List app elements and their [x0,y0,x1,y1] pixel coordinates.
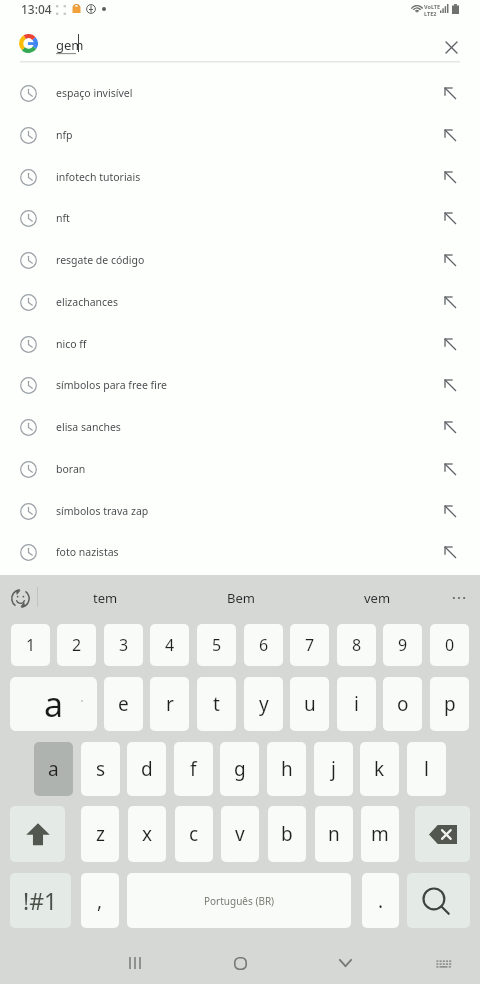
button[interactable]: e [104,677,143,731]
button[interactable]: 2 [57,624,96,666]
staticText: 8 [352,634,362,656]
staticText: 4 [165,634,175,656]
staticText: vem [364,589,391,607]
button[interactable]: p [430,677,469,731]
button[interactable]: nft [0,197,480,239]
button[interactable]: símbolos para free fire [0,364,480,406]
staticText: s [96,756,106,782]
button[interactable]: i [337,677,376,731]
button[interactable]: 0 [430,624,469,666]
button[interactable]: resgate de código [0,239,480,281]
staticText: e [118,691,129,717]
staticText: 5 [212,634,222,656]
button[interactable]: Bem [186,575,296,621]
button[interactable]: v [221,806,259,862]
button[interactable]: espaço invisível [0,72,480,114]
staticText: k [374,756,385,782]
button[interactable]: o [383,677,422,731]
staticText: elisa sanches [56,420,121,434]
staticText: elizachances [56,295,119,309]
button[interactable]: 9 [383,624,422,666]
button[interactable]: 1 [11,624,50,666]
button[interactable]: Recents [112,944,157,984]
button[interactable]: símbolos trava zap [0,490,480,532]
button[interactable]: m [361,806,399,862]
button[interactable]: w [57,677,96,731]
staticText: 13:04 [21,1,52,17]
staticText: c [189,821,199,847]
staticText: a [44,681,64,727]
button[interactable]: Clear [435,31,467,63]
button[interactable]: r [150,677,189,731]
button[interactable]: , [81,873,119,928]
button[interactable]: k [360,742,399,796]
button[interactable]: b [268,806,306,862]
staticText: t [213,691,220,717]
button[interactable]: elisa sanches [0,406,480,448]
button[interactable]: nico ff [0,323,480,365]
button[interactable]: l [407,742,446,796]
button[interactable]: . [362,873,399,928]
staticText: espaço invisível [56,86,133,100]
staticText: !#1 [23,885,58,916]
button[interactable]: 3 [104,624,143,666]
staticText: l [424,756,429,782]
staticText: y [259,691,269,717]
button[interactable]: 7 [290,624,329,666]
staticText: 9 [398,634,408,656]
staticText: o [397,691,409,717]
button[interactable]: infotech tutoriais [0,156,480,198]
button[interactable]: foto nazistas [0,531,480,573]
staticText: z [96,821,105,847]
button[interactable]: a [34,742,73,796]
button[interactable]: tem [50,575,160,621]
staticText: boran [56,462,86,476]
button[interactable]: Backspace [415,806,470,862]
button[interactable]: x [128,806,166,862]
staticText: , [97,888,103,914]
button[interactable]: More options [442,575,476,621]
button[interactable]: 5 [197,624,236,666]
button[interactable]: Change keyboard [421,944,466,984]
button[interactable]: 4 [150,624,189,666]
button[interactable]: Home [218,944,263,984]
staticText: 2 [72,634,82,656]
button[interactable]: y [244,677,283,731]
button[interactable]: Shift [10,806,65,862]
button[interactable]: nfp [0,114,480,156]
button[interactable]: boran [0,448,480,490]
button[interactable]: c [175,806,213,862]
button[interactable]: j [314,742,353,796]
staticText: d [141,756,153,782]
button[interactable]: !#1 [10,873,71,928]
button[interactable]: d [127,742,166,796]
button[interactable]: s [81,742,120,796]
button[interactable]: g [220,742,259,796]
button[interactable]: n [315,806,353,862]
staticText: VoLTE [424,3,441,10]
button[interactable]: Português (BR) [127,873,351,928]
button[interactable]: f [174,742,213,796]
staticText: 1 [26,634,36,656]
button[interactable]: Hide keyboard [323,944,368,984]
staticText: . [378,888,384,914]
staticText: 7 [305,634,315,656]
staticText: foto nazistas [56,545,119,559]
staticText: v [235,821,245,847]
button[interactable]: z [81,806,119,862]
button[interactable]: q [11,677,50,731]
button[interactable]: t [197,677,236,731]
staticText: gem [56,36,84,54]
button[interactable]: Search [407,873,470,928]
button[interactable]: 8 [337,624,376,666]
button[interactable]: 6 [244,624,283,666]
staticText: LTE2 [424,10,437,17]
button[interactable]: elizachances [0,281,480,323]
staticText: g [234,756,246,782]
button[interactable]: Emoji [5,583,36,614]
button[interactable]: vem [322,575,432,621]
button[interactable]: h [267,742,306,796]
button[interactable]: u [290,677,329,731]
staticText: h [281,756,293,782]
